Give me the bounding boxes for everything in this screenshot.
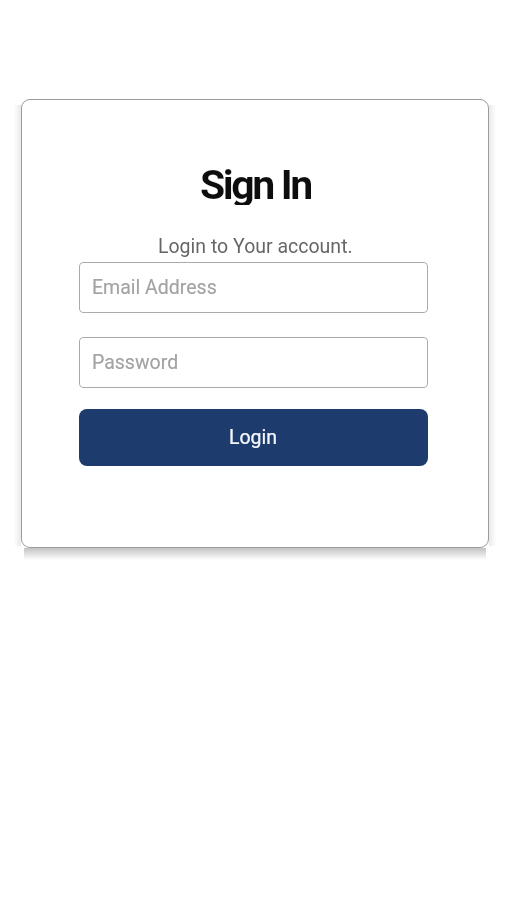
button[interactable]: Login bbox=[79, 409, 428, 466]
staticText: Sign In bbox=[200, 161, 311, 205]
button[interactable]: Password bbox=[79, 337, 428, 388]
button[interactable]: Email Address bbox=[79, 262, 428, 313]
staticText: Email Address bbox=[92, 276, 217, 299]
staticText: Login bbox=[229, 426, 278, 449]
staticText: Password bbox=[92, 351, 179, 374]
staticText: Login to Your account. bbox=[158, 235, 353, 258]
